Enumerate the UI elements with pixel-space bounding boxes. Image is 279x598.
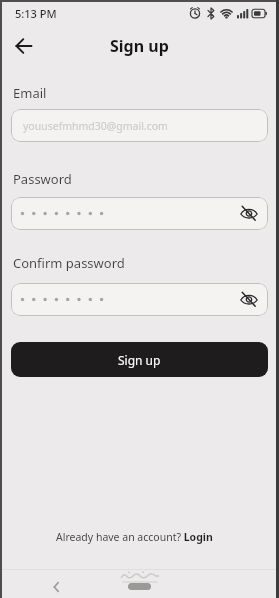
- button[interactable]: [128, 583, 151, 590]
- button[interactable]: youusefmhmd30@gmail.com: [11, 109, 268, 142]
- staticText: Sign up: [118, 352, 161, 368]
- button[interactable]: [11, 283, 268, 316]
- button[interactable]: Already have an account? Login: [56, 530, 213, 544]
- button[interactable]: [11, 197, 268, 230]
- staticText: youusefmhmd30@gmail.com: [23, 119, 168, 133]
- staticText: 5:13 PM: [15, 6, 57, 21]
- staticText: Sign up: [110, 35, 169, 57]
- staticText: Email: [13, 84, 47, 102]
- staticText: Already have an account? Login: [56, 530, 213, 544]
- button[interactable]: Sign up: [11, 342, 268, 377]
- staticText: Confirm password: [13, 254, 125, 272]
- staticText: Password: [13, 170, 72, 188]
- button[interactable]: [9, 31, 39, 61]
- button[interactable]: [47, 578, 65, 596]
